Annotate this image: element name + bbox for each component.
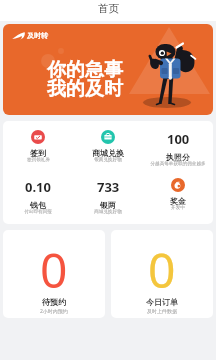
button[interactable]: 0 [111,230,213,318]
staticText: 执照分 [166,152,190,162]
button[interactable]: 及时转 [3,24,213,115]
staticText: 商城兑换 [92,148,124,158]
staticText: 首页 [98,2,119,15]
staticText: 银两兑换好物 [94,157,122,163]
staticText: 签到领礼券 [27,157,50,163]
staticText: 0 [148,237,176,302]
staticText: 商城兑换好物 [94,209,122,215]
button[interactable]: 签到 [3,130,73,164]
staticText: 开发中 [171,205,185,211]
staticText: 100 [167,130,190,148]
staticText: 待预约 [42,297,66,307]
staticText: 分越高每单获取的佣金越多 [150,161,206,167]
button[interactable]: 733 [73,178,143,216]
staticText: 及时上件数据 [147,308,177,314]
button[interactable]: 100 [143,130,213,168]
button[interactable]: 商城兑换 [73,130,143,164]
staticText: 2小时内预约 [40,308,68,315]
staticText: 0.10 [25,178,51,196]
staticText: 银两 [100,200,116,210]
staticText: 733 [97,178,120,196]
staticText: 钱包 [30,200,46,210]
button[interactable]: 0 [3,230,105,318]
staticText: 0 [40,237,68,302]
staticText: 签到 [30,148,46,158]
staticText: 今日订单 [146,297,178,307]
staticText: 奖金 [170,196,186,206]
staticText: 及时转 [27,31,48,40]
staticText: 我的及时 [47,77,123,101]
button[interactable]: 0.10 [3,178,73,216]
button[interactable]: 奖金 [143,178,213,212]
staticText: 你的急事 [47,58,123,82]
staticText: 付出即有回报 [24,209,52,215]
